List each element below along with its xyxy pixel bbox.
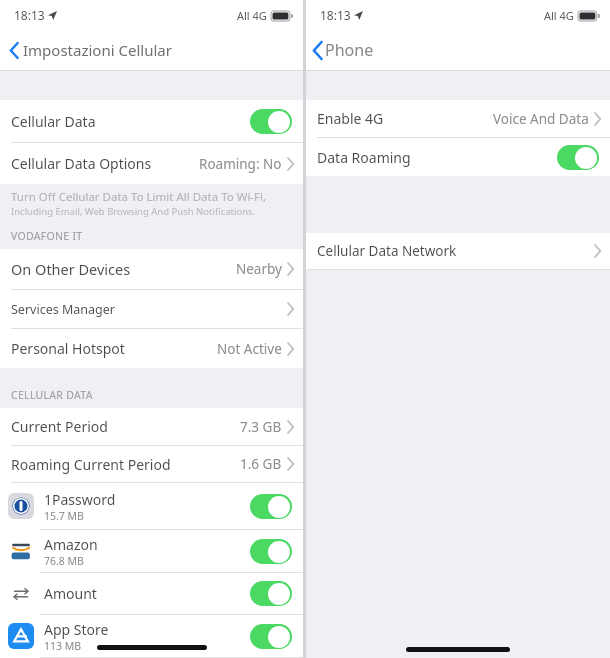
staticText: On Other Devices bbox=[11, 259, 131, 279]
button[interactable]: Toggle bbox=[557, 145, 599, 170]
button[interactable]: Data Roaming bbox=[306, 138, 610, 176]
button[interactable]: Services Manager bbox=[0, 290, 303, 328]
staticText: 7.3 GB bbox=[240, 418, 282, 436]
staticText: Amazon bbox=[44, 535, 98, 554]
button[interactable]: Amount bbox=[0, 573, 303, 614]
button[interactable]: Cellular Data Network bbox=[306, 233, 610, 269]
button[interactable]: Cellular Data bbox=[0, 100, 303, 142]
button[interactable]: Cellular Data Options bbox=[0, 143, 303, 184]
staticText: Not Active bbox=[217, 340, 282, 358]
staticText: Roaming: No bbox=[199, 155, 282, 173]
staticText: Data Roaming bbox=[317, 148, 411, 167]
staticText: Amount bbox=[44, 584, 97, 603]
button[interactable]: Roaming Current Period bbox=[0, 446, 303, 482]
staticText: Phone bbox=[325, 39, 374, 61]
staticText: Roaming Current Period bbox=[11, 455, 171, 474]
staticText: All 4G bbox=[237, 8, 267, 23]
button[interactable]: Toggle bbox=[250, 494, 292, 519]
staticText: All 4G bbox=[544, 8, 574, 23]
button[interactable]: Toggle bbox=[250, 539, 292, 564]
staticText: 1.6 GB bbox=[240, 455, 282, 473]
staticText: Current Period bbox=[11, 417, 108, 436]
staticText: VODAFONE IT bbox=[11, 229, 83, 243]
staticText: 113 MB bbox=[44, 639, 82, 653]
button[interactable]: Back bbox=[5, 39, 23, 61]
staticText: Cellular Data Network bbox=[317, 242, 457, 260]
staticText: Turn Off Cellular Data To Limit All Data… bbox=[11, 189, 267, 205]
staticText: Voice And Data bbox=[493, 110, 589, 128]
button[interactable]: Toggle bbox=[250, 109, 292, 134]
staticText: 18:13 bbox=[14, 7, 45, 23]
staticText: App Store bbox=[44, 620, 109, 639]
button[interactable]: Personal Hotspot bbox=[0, 329, 303, 368]
staticText: 15.7 MB bbox=[44, 509, 84, 523]
button[interactable]: Phone bbox=[313, 39, 374, 61]
staticText: 1Password bbox=[44, 490, 116, 509]
staticText: Cellular Data Options bbox=[11, 154, 152, 173]
button[interactable]: Current Period bbox=[0, 408, 303, 445]
staticText: Services Manager bbox=[11, 301, 115, 318]
button[interactable]: Amazon bbox=[0, 530, 303, 572]
staticText: Cellular Data bbox=[11, 112, 96, 131]
button[interactable]: Enable 4G bbox=[306, 100, 610, 137]
button[interactable]: App Store bbox=[0, 615, 303, 657]
button[interactable]: On Other Devices bbox=[0, 249, 303, 289]
button[interactable]: Toggle bbox=[250, 624, 292, 649]
button[interactable]: Toggle bbox=[250, 581, 292, 606]
staticText: Including Email, Web Browsing And Push N… bbox=[11, 205, 256, 218]
button[interactable]: 1Password bbox=[0, 483, 303, 529]
staticText: Impostazioni Cellular bbox=[23, 40, 172, 60]
staticText: 76.8 MB bbox=[44, 554, 84, 568]
staticText: CELLULAR DATA bbox=[11, 388, 93, 402]
staticText: Nearby bbox=[236, 260, 282, 278]
staticText: Enable 4G bbox=[317, 109, 384, 128]
staticText: Personal Hotspot bbox=[11, 339, 125, 358]
staticText: 18:13 bbox=[320, 7, 351, 23]
